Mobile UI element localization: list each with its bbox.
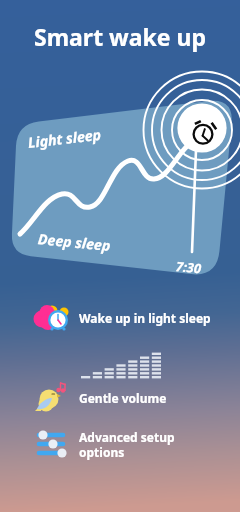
staticText: Smart wake up: [0, 21, 240, 52]
staticText: Wake up in light sleep: [79, 310, 211, 326]
staticText: Light sleep: [27, 125, 103, 152]
staticText: 7:30: [175, 257, 203, 277]
staticText: Deep sleep: [37, 229, 112, 255]
button[interactable]: Advanced setup options: [0, 422, 240, 466]
button[interactable]: Gentle volume: [0, 376, 240, 420]
button[interactable]: Wake up in light sleep: [0, 296, 240, 340]
staticText: Gentle volume: [79, 390, 167, 406]
staticText: Advanced setup options: [79, 429, 175, 460]
